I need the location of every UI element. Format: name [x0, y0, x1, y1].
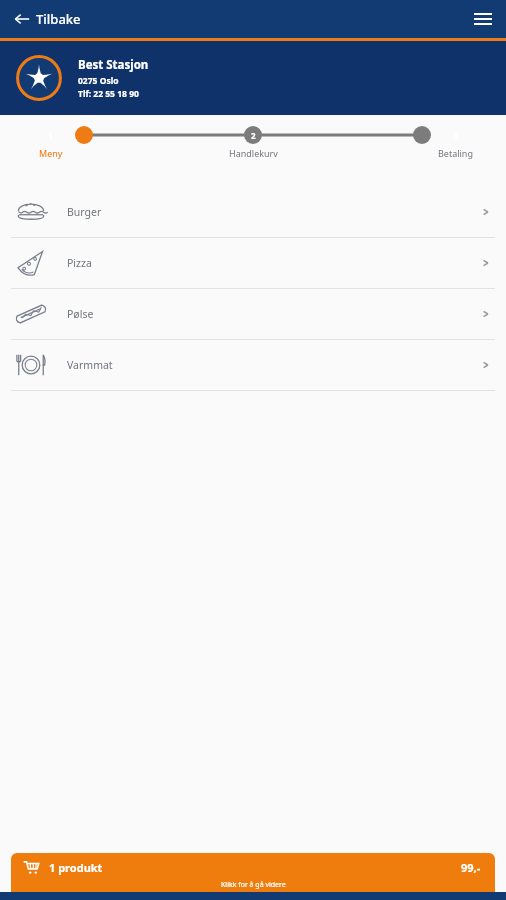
staticText: Betaling: [438, 147, 473, 159]
button[interactable]: 1 produkt: [11, 853, 495, 892]
button[interactable]: Pølse: [0, 289, 506, 339]
staticText: 99,-: [461, 860, 481, 875]
staticText: Pølse: [67, 307, 94, 321]
staticText: 0275 Oslo: [78, 75, 119, 87]
staticText: 1 produkt: [49, 860, 103, 875]
button[interactable]: Burger: [0, 187, 506, 237]
staticText: Klikk for å gå videre: [221, 880, 286, 890]
staticText: Best Stasjon: [78, 57, 149, 73]
staticText: Tlf: 22 55 18 90: [78, 88, 139, 100]
staticText: Varmmat: [67, 358, 113, 372]
staticText: Meny: [39, 147, 63, 159]
button[interactable]: Pizza: [0, 238, 506, 288]
staticText: Handlekurv: [229, 147, 278, 159]
staticText: 2: [251, 130, 256, 141]
button[interactable]: Menu: [470, 6, 496, 32]
button[interactable]: Varmmat: [0, 340, 506, 390]
staticText: Burger: [67, 205, 102, 219]
button[interactable]: Tilbake: [10, 6, 85, 32]
staticText: Pizza: [67, 256, 92, 270]
staticText: Tilbake: [36, 10, 81, 28]
